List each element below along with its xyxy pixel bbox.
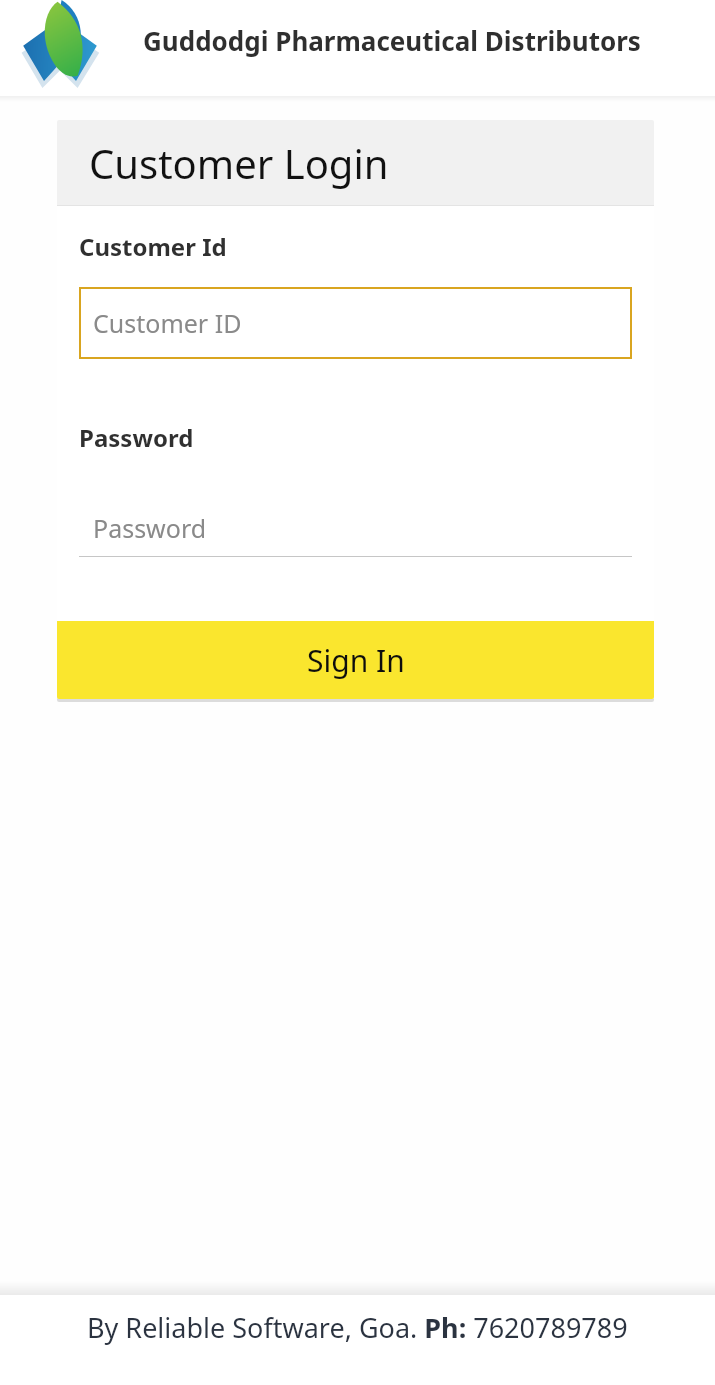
staticText: Customer Login <box>89 136 389 190</box>
button[interactable]: Sign In <box>57 621 654 699</box>
staticText: Password <box>79 421 194 454</box>
staticText: Sign In <box>307 640 405 681</box>
staticText: Guddodgi Pharmaceutical Distributors <box>143 23 641 58</box>
staticText: By Reliable Software, Goa. Ph: 762078978… <box>87 1309 628 1346</box>
staticText: Password <box>93 511 207 545</box>
staticText: Customer ID <box>93 306 242 340</box>
other: Guddodgi logo <box>20 0 100 88</box>
button[interactable]: Customer ID <box>79 287 632 359</box>
staticText: Customer Id <box>79 230 227 263</box>
button[interactable]: Password <box>79 500 632 557</box>
